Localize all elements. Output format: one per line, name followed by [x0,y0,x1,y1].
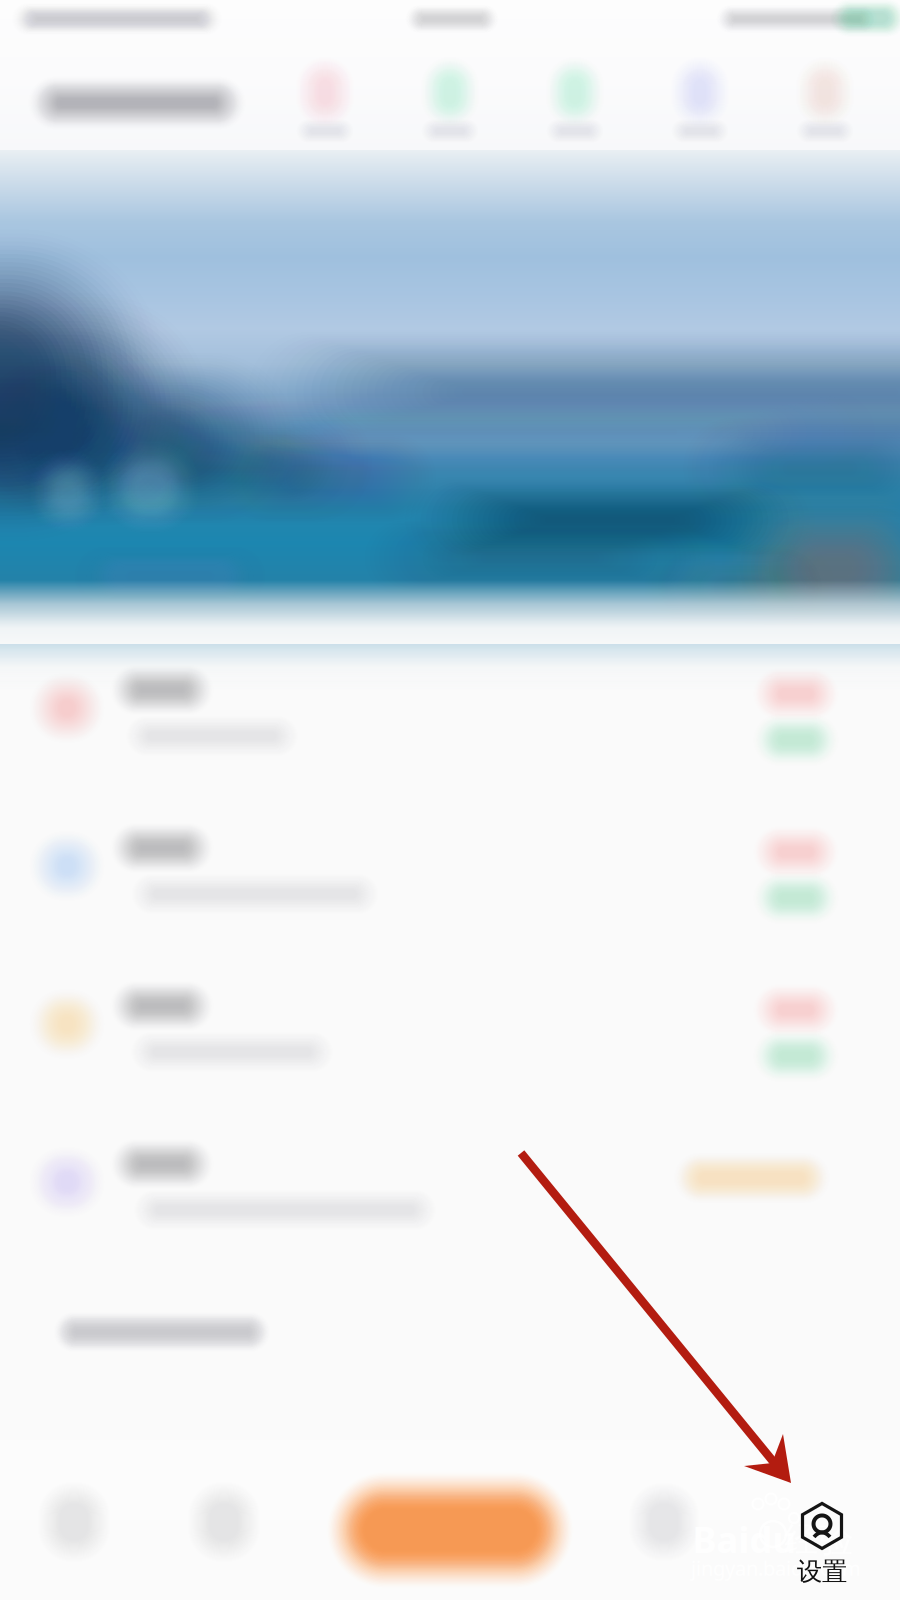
staticText: 经验 [784,1519,854,1561]
staticText: 设置 [797,1556,847,1587]
staticText: jingyan.baidu.com [691,1555,861,1581]
button[interactable]: 设置 [774,1496,870,1592]
